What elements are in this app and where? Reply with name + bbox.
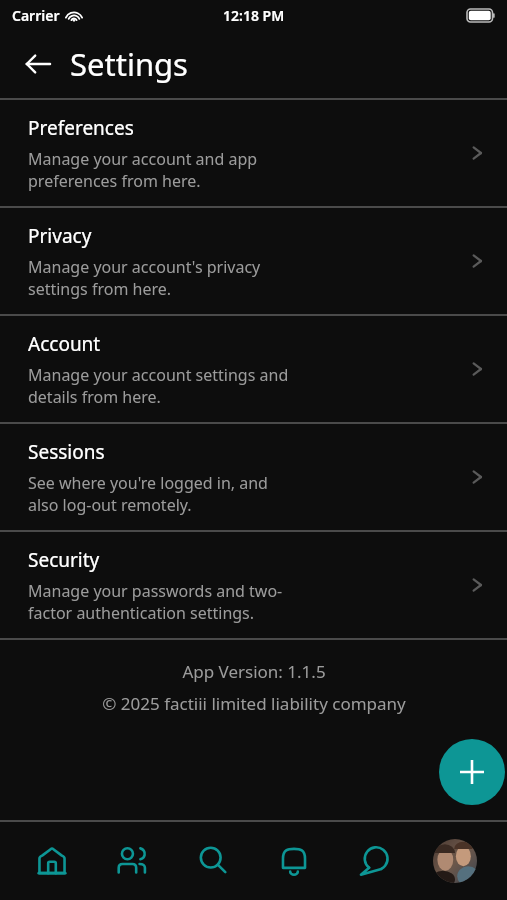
staticText: details from here. xyxy=(28,386,161,408)
button[interactable]: Add xyxy=(439,739,505,805)
button[interactable]: Messages xyxy=(346,832,404,890)
button[interactable]: Notifications xyxy=(265,832,323,890)
staticText: App Version: 1.1.5 xyxy=(182,660,326,683)
button[interactable]: Profile xyxy=(426,832,484,890)
staticText: Security xyxy=(28,547,100,573)
staticText: Manage your account and app xyxy=(28,148,258,170)
staticText: Manage your passwords and two- xyxy=(28,580,283,602)
staticText: also log-out remotely. xyxy=(28,494,192,516)
staticText: 12:18 PM xyxy=(223,6,285,25)
button[interactable]: Security xyxy=(0,532,507,638)
button[interactable]: Privacy xyxy=(0,208,507,314)
staticText: See where you're logged in, and xyxy=(28,472,268,494)
staticText: Account xyxy=(28,331,101,357)
staticText: settings from here. xyxy=(28,278,172,300)
staticText: factor authentication settings. xyxy=(28,602,255,624)
button[interactable]: Back xyxy=(18,44,58,84)
staticText: Privacy xyxy=(28,223,92,249)
staticText: © 2025 factiii limited liability company xyxy=(102,692,406,715)
staticText: Settings xyxy=(70,43,188,85)
button[interactable]: Account xyxy=(0,316,507,422)
button[interactable]: People xyxy=(103,832,161,890)
staticText: Preferences xyxy=(28,115,134,141)
button[interactable]: Preferences xyxy=(0,100,507,206)
staticText: Manage your account settings and xyxy=(28,364,289,386)
staticText: Manage your account's privacy xyxy=(28,256,261,278)
staticText: preferences from here. xyxy=(28,170,201,192)
staticText: Carrier xyxy=(12,6,60,25)
button[interactable]: Search xyxy=(184,832,242,890)
staticText: Sessions xyxy=(28,439,105,465)
button[interactable]: Sessions xyxy=(0,424,507,530)
button[interactable]: Home xyxy=(23,832,81,890)
